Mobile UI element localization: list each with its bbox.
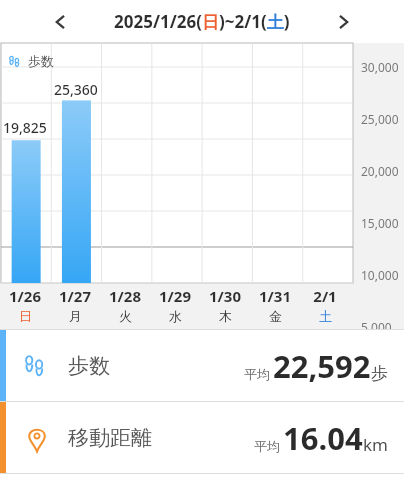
staticText: 5,000 — [361, 319, 392, 335]
button[interactable]: Distance — [0, 402, 404, 473]
staticText: 火 — [119, 308, 132, 324]
staticText: 1/27 — [59, 286, 91, 306]
other: Distance — [22, 423, 52, 453]
staticText: 土 — [319, 308, 332, 324]
staticText: 1/29 — [159, 286, 191, 306]
staticText: 2/1 — [313, 286, 337, 306]
staticText: 25,000 — [361, 111, 399, 127]
staticText: 2025/1/26(日)~2/1(土) — [114, 10, 290, 33]
staticText: 月 — [69, 308, 82, 324]
staticText: 歩数 — [68, 353, 110, 379]
staticText: 1/26 — [9, 286, 41, 306]
staticText: 1/31 — [259, 286, 291, 306]
staticText: 歩数 — [28, 53, 54, 69]
staticText: 1/30 — [209, 286, 241, 306]
staticText: 歩 — [371, 363, 388, 384]
staticText: 16.04 — [283, 417, 363, 459]
staticText: 日 — [19, 308, 32, 324]
staticText: 金 — [269, 308, 282, 324]
staticText: 水 — [169, 308, 182, 324]
staticText: 1/28 — [109, 286, 141, 306]
button[interactable]: Next week — [326, 4, 362, 40]
staticText: 0 — [361, 371, 368, 387]
button[interactable]: Previous week — [42, 4, 78, 40]
other: Steps — [22, 351, 52, 381]
staticText: 木 — [219, 308, 232, 324]
staticText: 22,592 — [273, 345, 371, 387]
staticText: 20,000 — [361, 163, 399, 179]
staticText: 10,000 — [361, 267, 399, 283]
staticText: 30,000 — [361, 59, 399, 75]
staticText: km — [363, 433, 388, 456]
staticText: 移動距離 — [68, 425, 152, 451]
staticText: 平均 — [254, 438, 280, 454]
staticText: 19,825 — [3, 118, 47, 137]
staticText: 15,000 — [361, 215, 399, 231]
button[interactable]: Steps — [0, 330, 404, 401]
staticText: 平均 — [244, 366, 270, 382]
staticText: 25,360 — [54, 80, 98, 99]
